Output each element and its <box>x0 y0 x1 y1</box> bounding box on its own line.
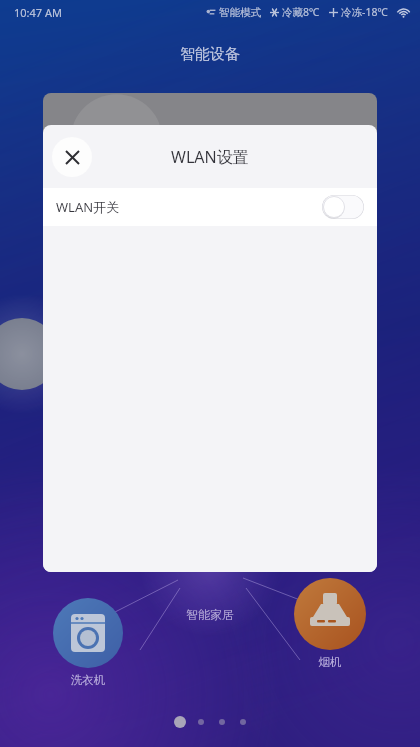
staticText: WLAN设置 <box>171 146 249 168</box>
button[interactable]: 洗衣机 <box>53 598 123 668</box>
button[interactable]: WLAN开关 <box>322 195 364 219</box>
staticText: 智能设备 <box>180 45 240 64</box>
button[interactable]: WLAN开关 <box>43 188 377 226</box>
button[interactable]: 洗衣机 <box>58 673 118 687</box>
staticText: 冷冻-18℃ <box>341 5 388 19</box>
button[interactable]: 烟机 <box>294 578 366 650</box>
staticText: 10:47 AM <box>14 5 62 20</box>
staticText: 冷藏8℃ <box>282 5 320 19</box>
staticText: 智能模式 <box>219 6 261 19</box>
button[interactable]: 烟机 <box>300 655 360 669</box>
button[interactable]: 关闭 <box>52 137 92 177</box>
button[interactable]: 智能家居 <box>170 607 250 622</box>
staticText: WLAN开关 <box>56 198 120 216</box>
